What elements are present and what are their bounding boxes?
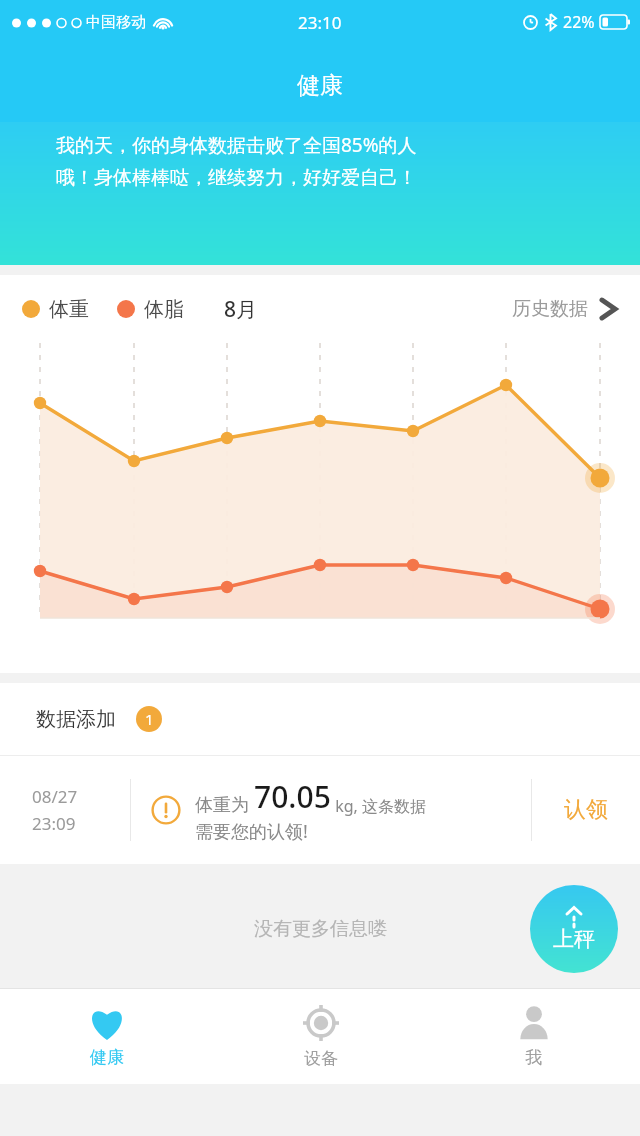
staticText: 历史数据 <box>512 297 588 321</box>
staticText: kg, 这条数据 <box>331 795 426 817</box>
button[interactable]: 我 <box>427 989 640 1084</box>
staticText: 22% <box>563 11 595 33</box>
staticText: 哦！身体棒棒哒，继续努力，好好爱自己！ <box>56 166 417 190</box>
staticText: 1 <box>145 709 154 729</box>
staticText: 8月 <box>224 295 258 324</box>
staticText: 中国移动 <box>86 13 146 32</box>
staticText: 70.05 <box>254 776 331 817</box>
staticText: 23:10 <box>298 11 342 34</box>
button[interactable]: 认领 <box>532 756 640 864</box>
button[interactable]: 上秤 <box>530 885 618 973</box>
button[interactable]: 设备 <box>214 989 427 1084</box>
staticText: 23:09 <box>32 812 76 835</box>
staticText: 上秤 <box>553 926 595 952</box>
button[interactable]: 历史数据 <box>500 289 618 329</box>
staticText: 设备 <box>304 1048 338 1069</box>
staticText: 我的天，你的身体数据击败了全国85%的人 <box>56 132 417 158</box>
staticText: 数据添加 <box>36 707 116 732</box>
staticText: 体重为 <box>195 792 254 817</box>
button[interactable]: 健康 <box>0 989 214 1084</box>
staticText: 没有更多信息喽 <box>254 917 387 941</box>
staticText: 08/27 <box>32 785 78 808</box>
staticText: 健康 <box>297 71 343 100</box>
staticText: 体脂 <box>144 297 184 322</box>
staticText: 体重 <box>49 297 89 322</box>
staticText: 需要您的认领! <box>195 819 308 844</box>
staticText: 我 <box>525 1047 542 1068</box>
button[interactable]: 08/27 <box>0 756 640 864</box>
staticText: 健康 <box>90 1047 124 1068</box>
staticText: 认领 <box>564 796 608 824</box>
